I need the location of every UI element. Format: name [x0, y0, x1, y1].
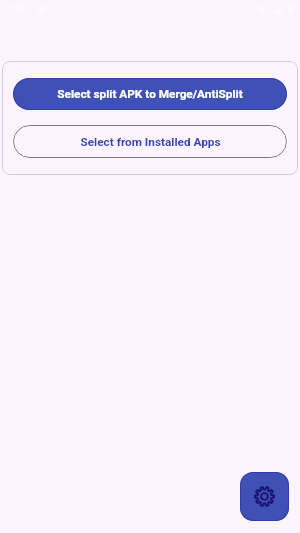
button[interactable]: Select split APK to Merge/AntiSplit [13, 78, 287, 110]
button[interactable]: Select from Installed Apps [13, 125, 287, 158]
button[interactable]: Settings [240, 472, 289, 521]
staticText: Select split APK to Merge/AntiSplit [57, 87, 243, 101]
staticText: Select from Installed Apps [80, 135, 221, 149]
